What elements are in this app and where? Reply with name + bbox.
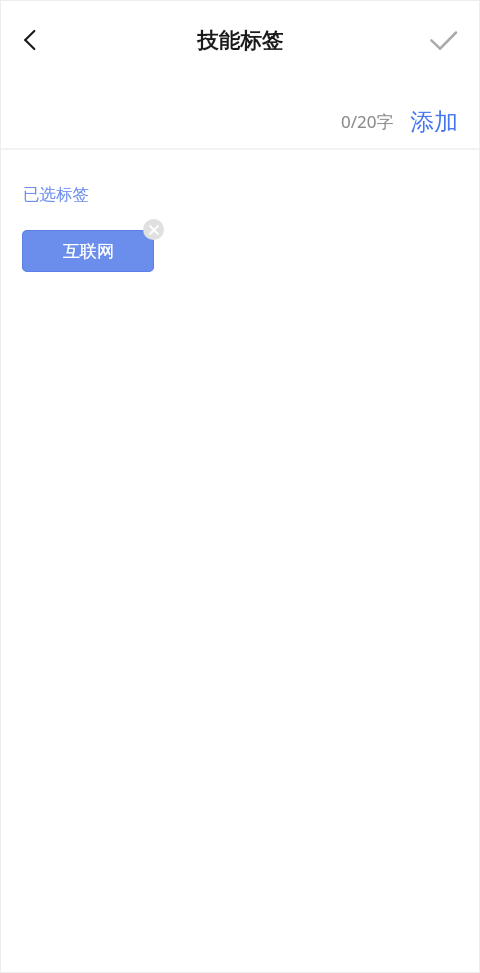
staticText: 互联网 <box>63 241 114 262</box>
staticText: 技能标签 <box>197 27 283 54</box>
button[interactable]: Remove tag <box>143 219 164 240</box>
staticText: 0/20字 <box>341 110 394 133</box>
button[interactable]: 互联网 <box>22 230 154 272</box>
staticText: 已选标签 <box>23 184 89 205</box>
staticText: 添加 <box>410 107 458 137</box>
button[interactable]: 添加 <box>402 105 466 139</box>
button[interactable]: Confirm <box>421 17 467 63</box>
button[interactable]: Back <box>6 16 54 64</box>
